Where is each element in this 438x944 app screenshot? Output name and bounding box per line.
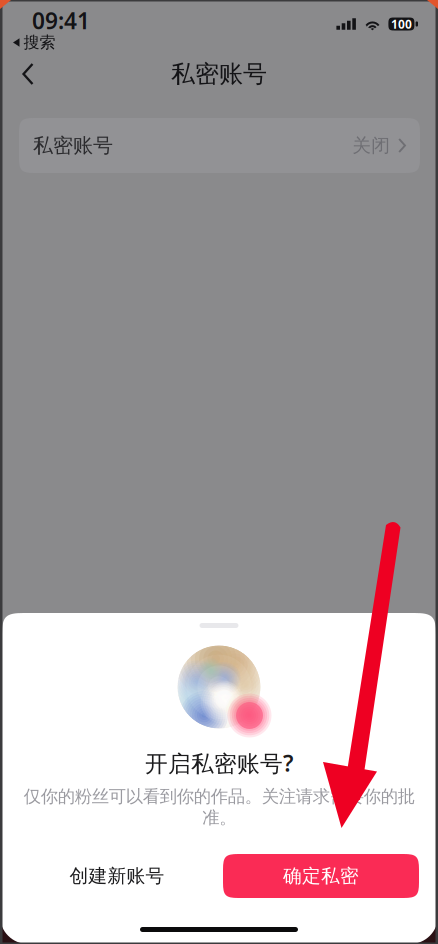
staticText: 关闭 xyxy=(352,134,390,157)
button[interactable]: 返回 xyxy=(6,52,50,96)
staticText: 搜索 xyxy=(23,33,55,52)
staticText: 09:41 xyxy=(32,5,90,35)
button[interactable]: 确定私密 xyxy=(223,854,419,898)
staticText: 确定私密 xyxy=(283,864,359,887)
staticText: 创建新账号 xyxy=(69,864,164,887)
staticText: 仅你的粉丝可以看到你的作品。关注请求需要你的批准。 xyxy=(23,786,414,828)
staticText: 开启私密账号? xyxy=(145,748,293,778)
staticText: 私密账号 xyxy=(33,133,113,158)
staticText: 私密账号 xyxy=(171,59,267,89)
button[interactable]: 创建新账号 xyxy=(19,854,215,898)
button[interactable]: 私密账号 xyxy=(19,118,420,173)
staticText: 100 xyxy=(391,16,412,32)
